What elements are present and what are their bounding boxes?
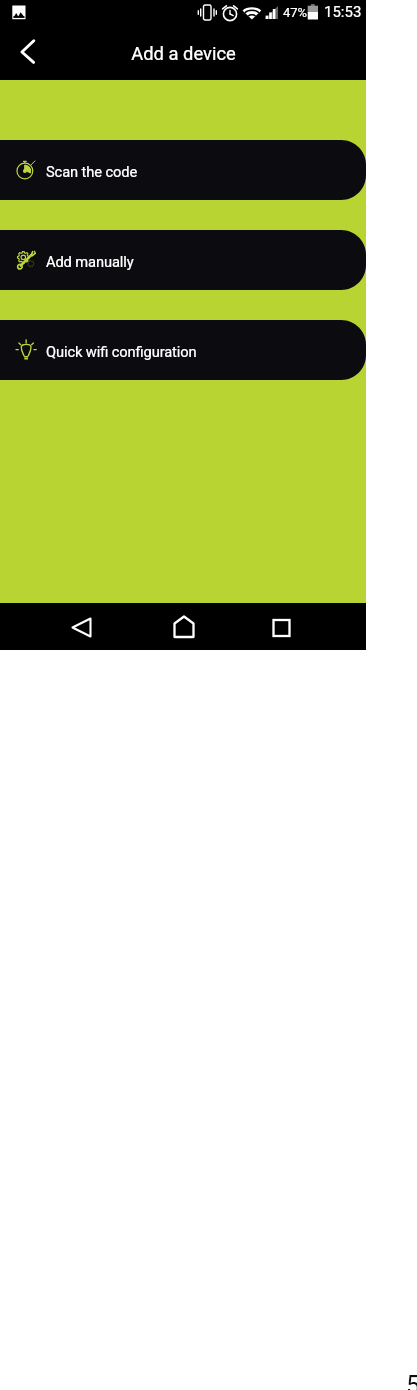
button[interactable]: Scan the code [0, 140, 366, 200]
button[interactable]: Quick wifi configuration [0, 320, 366, 380]
button[interactable]: Navigate back [58, 603, 105, 650]
button[interactable]: Add manually [0, 230, 366, 290]
button[interactable]: Back [4, 29, 52, 77]
staticText: Quick wifi configuration [46, 343, 197, 360]
button[interactable]: Home [160, 603, 207, 650]
staticText: Scan the code [46, 163, 138, 180]
staticText: 47% [283, 5, 308, 20]
staticText: Add manually [46, 253, 134, 270]
staticText: 15:53 [324, 3, 362, 21]
button[interactable]: Recent apps [258, 603, 305, 650]
staticText: 5 [406, 1371, 417, 1390]
staticText: Add a device [131, 43, 236, 65]
